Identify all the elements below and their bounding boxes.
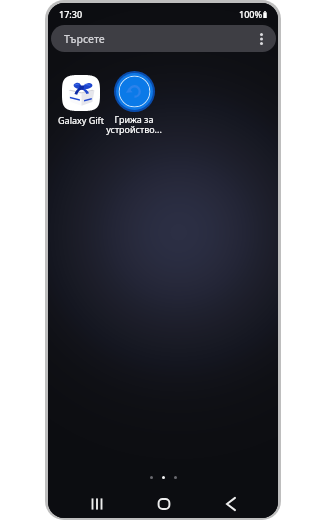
staticText: Galaxy Gift — [58, 114, 104, 126]
staticText: 17:30 — [59, 8, 83, 20]
button[interactable]: Home — [148, 488, 180, 518]
button[interactable]: Грижа за устройство... — [94, 71, 174, 136]
button[interactable]: Търсете — [51, 25, 276, 52]
staticText: 100% — [239, 8, 263, 20]
button[interactable]: Recent apps — [81, 488, 113, 518]
staticText: Грижа за устройство... — [106, 113, 162, 136]
button[interactable]: Back — [215, 488, 247, 518]
staticText: Търсете — [64, 32, 105, 46]
button[interactable]: Galaxy Gift — [56, 75, 106, 126]
button[interactable]: More options — [252, 30, 270, 48]
